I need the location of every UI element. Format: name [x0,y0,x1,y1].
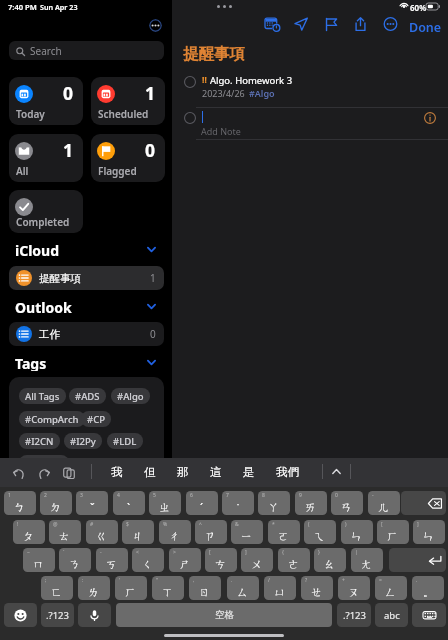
button[interactable]: Date [264,17,280,31]
button[interactable]: ^ [195,520,227,544]
staticText: Algo. Homework 3 [210,74,293,87]
button[interactable]: Flag [323,17,339,31]
button[interactable]: Redo [36,465,51,480]
button[interactable]: ‼ [184,73,448,103]
button[interactable]: ( [304,520,336,544]
button[interactable]: / [264,576,296,600]
button[interactable]: All Tags [19,388,66,404]
button[interactable]: ? [301,576,333,600]
staticText: ㄖ [199,585,211,599]
button[interactable]: Search [9,41,164,60]
button[interactable]: > [169,548,201,572]
button[interactable]: ~ [23,548,55,572]
button[interactable]: 那 [177,465,189,480]
button[interactable]: 提醒事項 [9,266,164,290]
button[interactable]: Done [409,19,442,32]
button[interactable]: Completed [9,190,83,233]
button[interactable]: Collapse Outlook [144,302,158,311]
button[interactable]: [ [205,548,237,572]
button[interactable]: , [189,576,221,600]
button[interactable]: #I2Py [64,433,102,449]
button[interactable]: 但 [144,465,156,480]
button[interactable]: } [314,548,346,572]
button[interactable]: 0 [91,134,165,182]
button[interactable]: 1 [91,77,165,125]
button[interactable]: 3 [76,491,108,515]
button[interactable]: 9 [295,491,327,515]
button[interactable]: 7 [222,491,254,515]
button[interactable]: Collapse iCloud [144,245,158,254]
button[interactable]: More options [149,19,162,32]
button[interactable]: 0 [331,491,363,515]
button[interactable]: | [351,548,383,572]
button[interactable]: Return [389,548,446,572]
button[interactable]: 1 [4,491,36,515]
button[interactable]: Paste [61,465,76,480]
button[interactable]: ' [115,576,147,600]
button[interactable]: ! [13,520,45,544]
button[interactable]: Multitasking controls [217,3,232,11]
button[interactable]: Hide keyboard [412,603,446,627]
button[interactable]: Outlook [15,298,72,315]
button[interactable]: Location [293,17,309,31]
button[interactable]: . [412,576,444,600]
button[interactable]: ] [241,548,273,572]
button[interactable]: 是 [243,465,255,480]
button[interactable]: - [96,548,128,572]
button[interactable]: : [78,576,110,600]
button[interactable]: 0 [9,77,83,125]
button[interactable]: #MLOps [19,455,69,471]
button[interactable]: 1 [9,134,83,182]
button[interactable]: 空格 [116,603,332,627]
button[interactable]: Backspace [401,491,446,515]
button[interactable]: 6 [186,491,218,515]
button[interactable]: 5 [149,491,181,515]
button[interactable]: + [338,576,370,600]
button[interactable]: * [268,520,300,544]
button[interactable]: #I2CN [19,433,60,449]
button[interactable]: #ADS [69,388,106,404]
button[interactable]: 4 [113,491,145,515]
button[interactable]: ` [59,548,91,572]
button[interactable]: & [231,520,263,544]
button[interactable]: #CompArch [19,411,85,427]
button[interactable]: .?123 [41,603,74,627]
button[interactable]: 這 [210,465,222,480]
staticText: ] [245,549,247,556]
button[interactable]: .?123 [337,603,371,627]
button[interactable]: ; [41,576,73,600]
button[interactable]: @ [49,520,81,544]
button[interactable]: . [227,576,259,600]
button[interactable]: Collapse Tags [144,358,158,367]
button[interactable]: [ [377,520,409,544]
button[interactable]: { [278,548,310,572]
button[interactable]: # [86,520,118,544]
button[interactable]: $ [122,520,154,544]
button[interactable]: #LDL [107,433,143,449]
button[interactable]: 8 [258,491,290,515]
button[interactable]: Undo [11,465,26,480]
button[interactable]: Emoji [4,603,37,627]
button[interactable]: Dictation [78,603,111,627]
button[interactable]: #CP [81,411,111,427]
button[interactable]: 工作 [9,322,164,346]
button[interactable]: Tags [15,354,47,371]
button[interactable]: iCloud [15,241,60,258]
button[interactable]: = [375,576,407,600]
button[interactable]: More suggestions [329,466,343,476]
button[interactable]: Share [352,17,368,31]
staticText: 60% [410,2,427,13]
button[interactable]: 我們 [276,465,299,480]
button[interactable]: ) [341,520,373,544]
button[interactable]: #Algo [111,388,150,404]
button[interactable]: abc [375,603,408,627]
button[interactable]: 2 [40,491,72,515]
button[interactable]: ] [413,520,445,544]
button[interactable]: Reminder details [424,112,436,124]
button[interactable]: 我 [111,465,123,480]
button[interactable]: % [159,520,191,544]
button[interactable]: " [152,576,184,600]
button[interactable]: < [132,548,164,572]
button[interactable]: - [368,491,400,515]
button[interactable]: More actions [382,17,398,31]
